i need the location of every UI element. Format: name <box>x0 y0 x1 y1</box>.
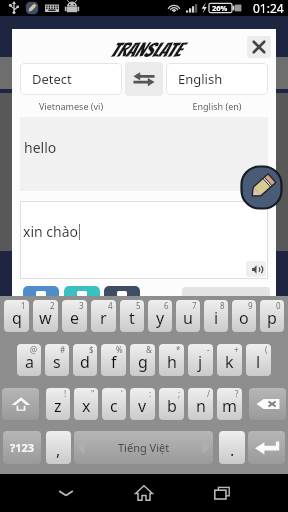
staticText: 8 <box>220 300 225 311</box>
staticText: xin chào <box>23 222 79 241</box>
staticText: t <box>129 307 135 329</box>
button[interactable]: Swap languages <box>125 62 163 96</box>
button[interactable]: English <box>166 63 268 95</box>
staticText: y <box>156 307 165 329</box>
staticText: 7 <box>192 300 197 311</box>
button[interactable]: Home <box>114 474 174 512</box>
button[interactable]: ?123 <box>3 431 41 464</box>
staticText: English (en) <box>166 100 268 112</box>
staticText: v <box>138 395 147 417</box>
staticText: # <box>60 344 66 355</box>
button[interactable]: f <box>101 344 126 376</box>
staticText: $ <box>89 344 94 355</box>
staticText: , <box>56 439 61 461</box>
staticText: Vietnamese (vi) <box>20 100 122 112</box>
staticText: " <box>91 388 95 399</box>
staticText: : <box>149 388 152 399</box>
staticText: c <box>110 395 118 417</box>
staticText: u <box>183 307 193 329</box>
staticText: i <box>214 307 219 329</box>
staticText: m <box>222 395 237 417</box>
button[interactable]: , <box>46 431 71 464</box>
staticText: x <box>82 395 91 417</box>
staticText: 0 <box>276 300 281 311</box>
staticText: r <box>100 307 107 329</box>
button[interactable]: Recents <box>192 474 252 512</box>
staticText: l <box>256 351 261 373</box>
staticText: o <box>239 307 249 329</box>
button[interactable]: j <box>188 344 213 376</box>
button[interactable]: d <box>73 344 97 376</box>
staticText: % <box>116 344 123 355</box>
staticText: 4 <box>108 300 113 311</box>
button[interactable]: . <box>219 431 245 464</box>
staticText: q <box>12 307 22 329</box>
button[interactable]: k <box>217 344 242 376</box>
button[interactable]: Share <box>64 286 100 296</box>
staticText: 9 <box>248 300 253 311</box>
button[interactable]: Enter <box>248 431 285 464</box>
button[interactable]: Close <box>247 36 271 58</box>
button[interactable]: b <box>159 388 184 420</box>
button[interactable]: m <box>217 388 242 420</box>
button[interactable]: Back <box>36 474 96 512</box>
staticText: j <box>198 351 203 373</box>
staticText: . <box>230 439 235 461</box>
staticText: English <box>178 70 223 88</box>
staticText: hello <box>24 138 57 157</box>
staticText: - <box>207 344 210 355</box>
button[interactable]: Shift <box>2 388 39 420</box>
button[interactable]: xin chào <box>20 201 268 279</box>
button[interactable]: g <box>130 344 155 376</box>
button[interactable]: i <box>204 300 228 332</box>
button[interactable]: o <box>232 300 256 332</box>
button[interactable]: t <box>120 300 144 332</box>
staticText: ! <box>64 388 67 399</box>
button[interactable]: c <box>102 388 126 420</box>
button[interactable]: v <box>130 388 155 420</box>
button[interactable]: Edit <box>240 165 283 210</box>
button[interactable]: w <box>33 300 58 332</box>
staticText: 01:24 <box>253 0 284 16</box>
staticText: ?123 <box>10 440 35 455</box>
staticText: 1 <box>21 300 26 311</box>
staticText: d <box>80 351 90 373</box>
staticText: / <box>207 388 210 399</box>
staticText: TRANSLATE <box>109 39 180 60</box>
button[interactable]: q <box>4 300 29 332</box>
button[interactable]: p <box>260 300 284 332</box>
staticText: k <box>225 351 234 373</box>
button[interactable]: y <box>148 300 172 332</box>
button[interactable]: e <box>62 300 87 332</box>
button[interactable]: Speak <box>246 261 266 277</box>
staticText: a <box>25 351 34 373</box>
staticText: Tiếng Việt <box>118 440 170 455</box>
button[interactable]: r <box>91 300 116 332</box>
staticText: w <box>39 307 52 329</box>
staticText: e <box>70 307 80 329</box>
button[interactable]: Save <box>104 286 140 296</box>
button[interactable]: Detect <box>20 63 122 95</box>
staticText: g <box>138 351 148 373</box>
staticText: b <box>167 395 177 417</box>
staticText: * <box>176 344 181 355</box>
staticText: 2 <box>50 300 55 311</box>
button[interactable]: x <box>74 388 98 420</box>
staticText: & <box>146 344 152 355</box>
button[interactable]: s <box>45 344 69 376</box>
button[interactable]: h <box>159 344 184 376</box>
staticText: s <box>53 351 61 373</box>
button[interactable]: a <box>17 344 41 376</box>
button[interactable]: Copy <box>23 286 59 296</box>
button[interactable]: Space <box>74 431 213 464</box>
button[interactable]: u <box>176 300 200 332</box>
button[interactable]: z <box>46 388 70 420</box>
staticText: f <box>111 351 117 373</box>
staticText: ; <box>178 388 181 399</box>
staticText: ( <box>265 344 268 355</box>
button[interactable]: hello <box>20 117 268 191</box>
button[interactable]: Delete <box>249 388 286 420</box>
staticText: Detect <box>32 70 72 88</box>
button[interactable]: n <box>188 388 213 420</box>
button[interactable]: l <box>246 344 271 376</box>
